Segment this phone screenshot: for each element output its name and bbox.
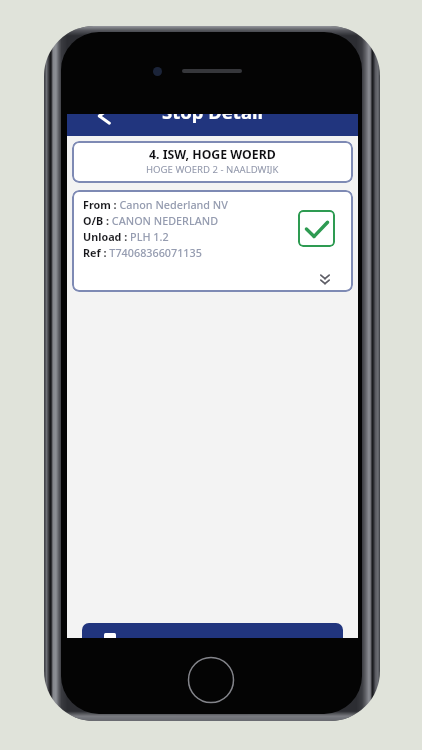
staticText: Ref : T74068366071135: [83, 245, 202, 260]
button[interactable]: From : Canon Nederland NV: [72, 190, 353, 292]
staticText: Stop Detail: [162, 114, 264, 124]
staticText: O/B : CANON NEDERLAND: [83, 213, 219, 228]
button[interactable]: Expand details: [315, 269, 335, 289]
button[interactable]: Completed: [298, 210, 335, 247]
staticText: From : Canon Nederland NV: [83, 197, 228, 212]
button[interactable]: 4. ISW, HOGE WOERD: [72, 141, 353, 183]
staticText: Unload : PLH 1.2: [83, 229, 169, 244]
button[interactable]: Aankomst: [82, 623, 343, 638]
button[interactable]: Back: [95, 114, 113, 125]
staticText: HOGE WOERD 2 - NAALDWIJK: [146, 163, 279, 176]
staticText: 4. ISW, HOGE WOERD: [149, 146, 276, 163]
button[interactable]: Back: [67, 114, 358, 136]
